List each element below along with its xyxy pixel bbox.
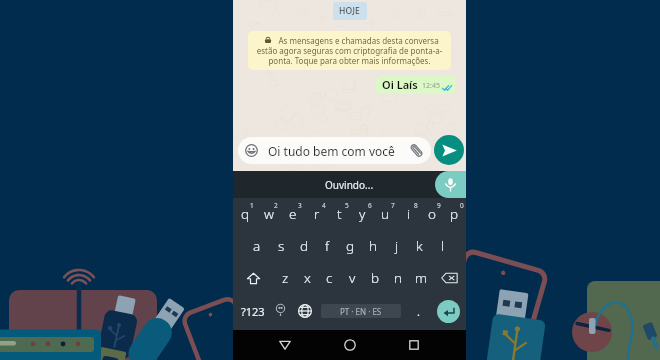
button[interactable]: j: [385, 230, 408, 262]
staticText: PT · EN · ES: [340, 306, 382, 317]
button[interactable]: m: [410, 262, 433, 294]
button[interactable]: As mensagens e chamadas desta conversa e…: [248, 31, 451, 70]
staticText: o: [428, 205, 436, 223]
staticText: y: [359, 205, 366, 223]
staticText: e: [289, 205, 297, 223]
staticText: s: [278, 237, 285, 255]
staticText: p: [450, 205, 459, 223]
staticText: v: [349, 269, 356, 287]
staticText: 9: [437, 201, 441, 210]
staticText: h: [369, 237, 378, 255]
button[interactable]: Shift: [233, 262, 274, 294]
staticText: d: [300, 237, 309, 255]
button[interactable]: l: [431, 230, 454, 262]
staticText: w: [264, 205, 274, 223]
button[interactable]: ?123: [237, 294, 269, 328]
button[interactable]: i: [397, 198, 420, 230]
staticText: c: [326, 269, 333, 287]
button[interactable]: r: [305, 198, 328, 230]
button[interactable]: p: [443, 198, 466, 230]
button[interactable]: w: [257, 198, 281, 230]
staticText: ?123: [241, 304, 265, 319]
staticText: Oi tudo bem com você: [268, 143, 395, 159]
button[interactable]: t: [328, 198, 351, 230]
staticText: f: [325, 237, 330, 255]
staticText: a: [253, 237, 261, 255]
button[interactable]: Send: [434, 135, 464, 165]
button[interactable]: y: [351, 198, 374, 230]
other: Emoji: [245, 144, 258, 157]
button[interactable]: u: [374, 198, 397, 230]
staticText: 6: [368, 201, 372, 210]
staticText: j: [395, 237, 399, 255]
button[interactable]: h: [362, 230, 385, 262]
staticText: k: [416, 237, 423, 255]
staticText: l: [441, 237, 445, 255]
staticText: i: [407, 205, 411, 223]
staticText: g: [346, 237, 355, 255]
staticText: m: [415, 269, 428, 287]
button[interactable]: Change language: [292, 294, 317, 328]
button[interactable]: v: [341, 262, 364, 294]
staticText: 0: [460, 201, 464, 210]
button[interactable]: s: [269, 230, 293, 262]
button[interactable]: PT · EN · ES: [321, 304, 401, 318]
staticText: Ouvindo...: [325, 178, 374, 192]
staticText: q: [241, 205, 250, 223]
button[interactable]: k: [408, 230, 431, 262]
button[interactable]: Stickers: [269, 294, 292, 328]
button[interactable]: x: [296, 262, 318, 294]
button[interactable]: c: [318, 262, 341, 294]
staticText: 1: [250, 201, 254, 210]
staticText: Oi Laís: [382, 77, 418, 92]
button[interactable]: n: [387, 262, 410, 294]
staticText: .: [417, 304, 420, 319]
button[interactable]: g: [339, 230, 362, 262]
button[interactable]: HOJE: [333, 2, 367, 20]
button[interactable]: Oi Laís: [376, 76, 456, 94]
staticText: x: [304, 269, 311, 287]
button[interactable]: f: [316, 230, 339, 262]
button[interactable]: b: [364, 262, 387, 294]
button[interactable]: q: [233, 198, 257, 230]
button[interactable]: Microphone: [435, 171, 466, 198]
staticText: t: [337, 205, 342, 223]
other: Attach: [409, 143, 424, 158]
staticText: 7: [391, 201, 395, 210]
button[interactable]: d: [293, 230, 316, 262]
staticText: 5: [345, 201, 349, 210]
staticText: b: [371, 269, 380, 287]
button[interactable]: a: [245, 230, 269, 262]
button[interactable]: o: [420, 198, 443, 230]
staticText: r: [314, 205, 320, 223]
button[interactable]: .: [407, 294, 429, 328]
button[interactable]: e: [281, 198, 305, 230]
staticText: 12:45: [422, 81, 440, 91]
button[interactable]: Backspace: [433, 262, 466, 294]
button[interactable]: Enter: [437, 300, 460, 323]
staticText: As mensagens e chamadas desta conversa e…: [253, 35, 446, 66]
button[interactable]: Home: [330, 330, 370, 360]
staticText: n: [394, 269, 403, 287]
button[interactable]: Emoji: [238, 137, 431, 164]
staticText: 8: [414, 201, 418, 210]
staticText: 3: [298, 201, 302, 210]
staticText: 4: [322, 201, 326, 210]
staticText: z: [282, 269, 289, 287]
staticText: u: [381, 205, 390, 223]
button[interactable]: z: [274, 262, 296, 294]
staticText: HOJE: [339, 5, 361, 17]
staticText: 2: [274, 201, 278, 210]
button[interactable]: Back: [265, 330, 305, 360]
button[interactable]: Recent apps: [394, 330, 434, 360]
